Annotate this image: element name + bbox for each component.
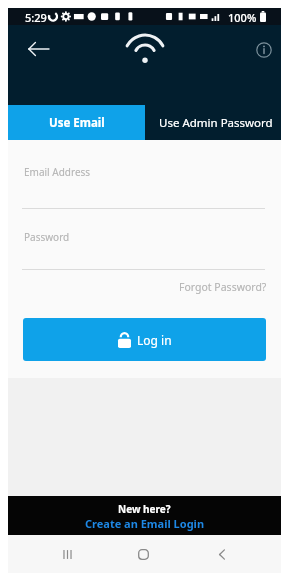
button[interactable]: Forgot Password? xyxy=(179,280,267,294)
button[interactable]: Use Admin Password xyxy=(145,105,281,140)
staticText: Use Email xyxy=(49,115,105,131)
button[interactable]: Back xyxy=(207,543,237,565)
button[interactable]: Information xyxy=(250,36,277,63)
staticText: Email Address xyxy=(24,165,91,179)
button[interactable]: Home xyxy=(128,543,158,565)
staticText: Password xyxy=(24,230,70,244)
staticText: Create an Email Login xyxy=(85,516,205,531)
button[interactable]: Use Email xyxy=(8,105,145,140)
staticText: Use Admin Password xyxy=(159,115,273,131)
staticText: 5:29 xyxy=(25,10,47,25)
button[interactable]: New here? xyxy=(8,496,281,535)
staticText: Log in xyxy=(137,332,172,348)
staticText: 100% xyxy=(228,10,257,25)
button[interactable]: Log in xyxy=(23,318,266,361)
staticText: New here? xyxy=(118,502,171,516)
button[interactable]: Recent apps xyxy=(52,543,82,565)
button[interactable]: Back xyxy=(20,31,56,67)
